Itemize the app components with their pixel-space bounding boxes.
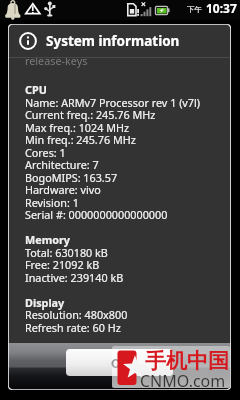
staticText: 手机中国 xyxy=(145,348,229,374)
staticText: Serial #: 0000000000000000 xyxy=(25,207,168,222)
staticText: Free: 21092 kB xyxy=(25,257,100,272)
other: Notifications xyxy=(5,0,22,20)
staticText: release-keys xyxy=(25,53,88,68)
staticText: CPU xyxy=(25,82,47,97)
staticText: CNMO.com xyxy=(140,370,226,392)
staticText: Max freq.: 1024 MHz xyxy=(25,120,130,135)
staticText: BogoMIPS: 163.57 xyxy=(25,170,118,185)
staticText: Inactive: 239140 kB xyxy=(25,270,124,285)
staticText: Display xyxy=(25,295,65,310)
staticText: Memory xyxy=(25,232,70,247)
staticText: Resolution: 480x800 xyxy=(25,307,128,322)
button[interactable]: OK xyxy=(66,349,173,376)
staticText: Total: 630180 kB xyxy=(25,245,108,260)
button[interactable]: System information xyxy=(8,24,231,57)
staticText: Current freq.: 245.76 MHz xyxy=(25,107,156,122)
other: Warning xyxy=(25,3,41,15)
staticText: Revision: 1 xyxy=(25,195,79,210)
staticText: Name: ARMv7 Processor rev 1 (v7l) xyxy=(25,95,201,110)
staticText: Cores: 1 xyxy=(25,145,66,160)
staticText: Min freq.: 245.76 MHz xyxy=(25,132,136,147)
staticText: Hardware: vivo xyxy=(25,182,101,197)
other: USB connected xyxy=(44,2,56,18)
staticText: OK xyxy=(111,355,129,371)
staticText: 下午 xyxy=(187,5,202,14)
staticText: System information xyxy=(46,32,180,50)
staticText: 10:37 xyxy=(206,0,237,16)
staticText: Refresh rate: 60 Hz xyxy=(25,320,121,335)
staticText: Architecture: 7 xyxy=(25,157,99,172)
